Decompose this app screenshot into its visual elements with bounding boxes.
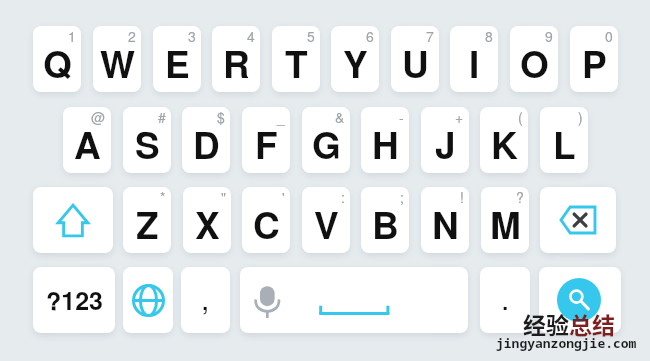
button[interactable]: ! (421, 187, 469, 253)
staticText: Q (43, 36, 72, 89)
button[interactable]: @ (63, 107, 111, 173)
button[interactable]: 5 (272, 26, 320, 92)
button[interactable]: 7 (391, 26, 439, 92)
button[interactable]: & (302, 107, 350, 173)
staticText: $ (217, 107, 225, 127)
staticText: I (469, 36, 480, 89)
button[interactable]: ' (242, 187, 290, 253)
staticText: ? (516, 187, 524, 207)
staticText: C (253, 197, 280, 250)
staticText: U (402, 36, 429, 89)
button[interactable]: Backspace (540, 187, 616, 253)
staticText: F (255, 117, 278, 170)
staticText: " (221, 187, 226, 207)
staticText: W (100, 36, 135, 89)
button[interactable]: Period (480, 267, 530, 333)
staticText: . (501, 276, 510, 319)
staticText: ' (282, 187, 285, 207)
staticText: - (399, 107, 404, 127)
button[interactable]: Change language (123, 267, 173, 333)
button[interactable]: Comma (181, 267, 230, 333)
staticText: 4 (247, 26, 255, 46)
staticText: ) (578, 107, 583, 127)
staticText: jingyanzongjie.com (496, 334, 637, 352)
staticText: L (553, 117, 576, 170)
button[interactable]: Symbols (33, 267, 115, 333)
button[interactable]: Space (240, 267, 468, 333)
button[interactable]: ) (540, 107, 588, 173)
staticText: S (135, 117, 160, 170)
button[interactable]: 4 (212, 26, 260, 92)
button[interactable]: 6 (331, 26, 379, 92)
staticText: 3 (188, 26, 196, 46)
button[interactable]: # (123, 107, 171, 173)
staticText: @ (91, 107, 106, 127)
button[interactable]: 0 (570, 26, 618, 92)
staticText: Z (136, 197, 159, 250)
staticText: ?123 (46, 282, 103, 318)
staticText: : (341, 187, 345, 207)
staticText: N (432, 197, 459, 250)
staticText: G (312, 117, 341, 170)
staticText: 8 (485, 26, 493, 46)
staticText: M (490, 197, 521, 250)
staticText: 0 (605, 26, 613, 46)
button[interactable]: " (183, 187, 231, 253)
button[interactable]: 3 (153, 26, 201, 92)
staticText: # (158, 107, 166, 127)
staticText: 总结 (569, 307, 615, 340)
staticText: 经验 (523, 307, 569, 340)
staticText: & (335, 107, 345, 127)
staticText: H (372, 117, 399, 170)
staticText: Y (343, 36, 368, 89)
staticText: 1 (68, 26, 76, 46)
staticText: J (435, 117, 456, 170)
button[interactable]: Shift (33, 187, 113, 253)
staticText: ! (460, 187, 464, 207)
staticText: 2 (128, 26, 136, 46)
staticText: ; (400, 187, 404, 207)
button[interactable]: 8 (450, 26, 498, 92)
staticText: E (165, 36, 190, 89)
button[interactable]: ; (361, 187, 409, 253)
staticText: 6 (366, 26, 374, 46)
staticText: T (285, 36, 308, 89)
staticText: K (491, 117, 518, 170)
staticText: 5 (307, 26, 315, 46)
button[interactable]: $ (182, 107, 230, 173)
button[interactable]: : (302, 187, 350, 253)
button[interactable]: 2 (93, 26, 141, 92)
staticText: D (193, 117, 220, 170)
button[interactable]: ? (481, 187, 529, 253)
staticText: R (223, 36, 250, 89)
button[interactable]: ( (480, 107, 528, 173)
button[interactable]: 1 (33, 26, 81, 92)
staticText: V (314, 197, 339, 250)
button[interactable]: - (361, 107, 409, 173)
staticText: X (195, 197, 220, 250)
button[interactable]: + (421, 107, 469, 173)
button[interactable]: 9 (510, 26, 558, 92)
staticText: _ (277, 107, 285, 127)
button[interactable]: _ (242, 107, 290, 173)
staticText: A (74, 117, 101, 170)
staticText: O (520, 36, 549, 89)
staticText: + (455, 107, 464, 127)
button[interactable]: * (123, 187, 171, 253)
staticText: 9 (545, 26, 553, 46)
staticText: * (160, 187, 166, 207)
staticText: 7 (426, 26, 434, 46)
staticText: B (372, 197, 399, 250)
button[interactable]: Search (539, 267, 621, 333)
staticText: P (582, 36, 607, 89)
staticText: ( (518, 107, 523, 127)
staticText: , (201, 276, 210, 319)
